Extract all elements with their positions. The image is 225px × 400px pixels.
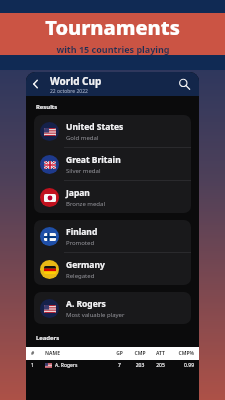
staticText: United States [66,121,124,133]
button[interactable]: Finland [34,220,191,252]
staticText: A. Rogers [55,362,78,369]
button[interactable]: Germany [34,253,191,285]
staticText: 22 octobre 2022 [50,88,88,95]
staticText: Relegated [66,272,95,280]
staticText: ATT [151,350,170,357]
staticText: World Cup [50,74,102,88]
staticText: Japan [66,187,90,199]
button[interactable]: A. Rogers [34,292,191,324]
staticText: Silver medal [66,167,101,175]
staticText: Germany [66,259,105,271]
staticText: Great Britain [66,154,121,166]
button[interactable]: Back [28,76,44,92]
button[interactable]: United States [34,115,191,147]
staticText: Bronze medal [66,200,105,208]
staticText: # [31,350,45,357]
staticText: 0.99 [170,362,194,369]
staticText: GP [110,350,129,357]
staticText: 205 [151,362,170,369]
staticText: 7 [110,362,129,369]
button[interactable]: 1 [26,360,199,371]
staticText: Most valuable player [66,311,125,319]
staticText: Promoted [66,239,95,247]
staticText: CMP [129,350,151,357]
staticText: Leaders [36,334,60,342]
staticText: 1 [31,362,45,369]
staticText: Tournaments [45,14,180,41]
staticText: NAME [45,350,110,357]
staticText: Finland [66,226,98,238]
staticText: 203 [129,362,151,369]
staticText: Results [36,103,58,111]
button[interactable]: Search [177,77,191,91]
button[interactable]: Great Britain [34,148,191,180]
staticText: CMP% [170,350,194,357]
button[interactable]: Japan [34,181,191,213]
staticText: A. Rogers [66,298,106,310]
staticText: with 15 countries playing [56,43,170,55]
staticText: Gold medal [66,134,99,142]
